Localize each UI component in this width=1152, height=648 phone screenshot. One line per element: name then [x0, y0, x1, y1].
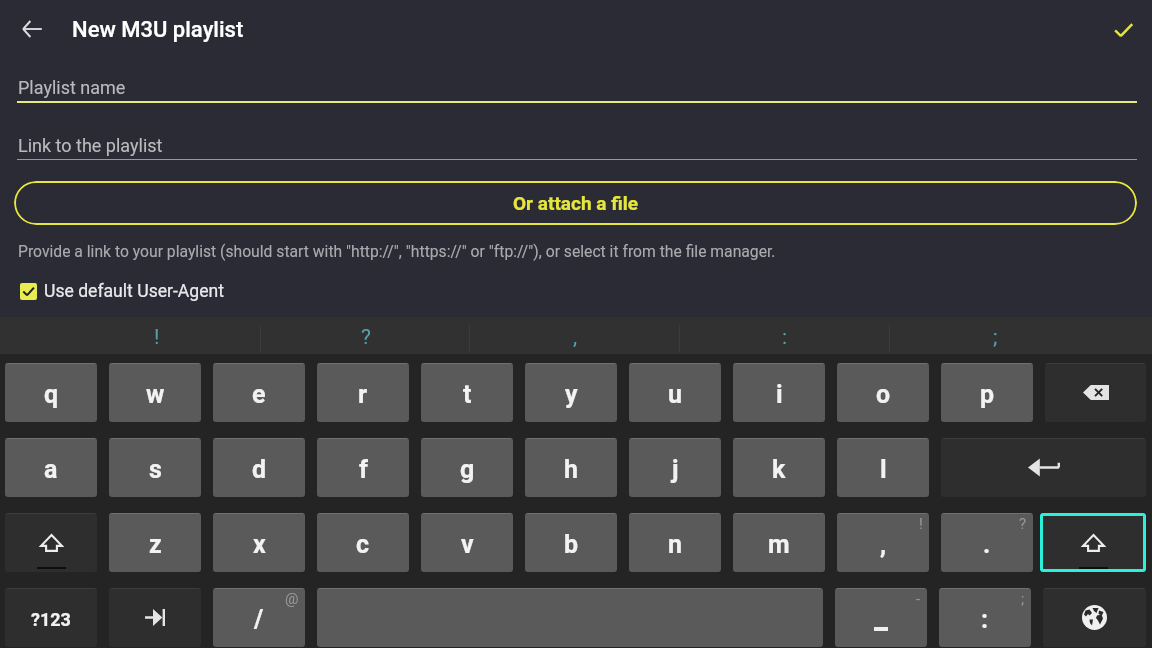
staticText: s — [149, 455, 162, 484]
staticText: ? — [1019, 515, 1027, 533]
button[interactable]: x — [213, 513, 305, 572]
staticText: z — [149, 530, 162, 559]
staticText: @ — [285, 590, 299, 608]
button[interactable]: o — [837, 363, 929, 422]
staticText: j — [672, 455, 679, 484]
button[interactable]: Backspace — [1045, 363, 1146, 422]
staticText: , — [880, 530, 887, 559]
staticText: ; — [993, 325, 998, 350]
button[interactable]: h — [525, 438, 617, 497]
staticText: u — [668, 380, 683, 409]
staticText: p — [980, 380, 995, 409]
staticText: : — [782, 325, 788, 350]
button[interactable]: , — [470, 317, 680, 354]
button[interactable]: Save — [1102, 8, 1144, 50]
button[interactable]: Back — [12, 9, 52, 49]
button[interactable]: - — [835, 588, 927, 647]
staticText: b — [564, 530, 579, 559]
staticText: ! — [154, 325, 160, 350]
button[interactable]: Link to the playlist — [0, 127, 1152, 161]
button[interactable]: v — [421, 513, 513, 572]
staticText: k — [772, 455, 786, 484]
button[interactable]: i — [733, 363, 825, 422]
button[interactable]: Or attach a file — [14, 181, 1137, 225]
button[interactable]: , — [837, 513, 929, 572]
button[interactable]: e — [213, 363, 305, 422]
staticText: q — [44, 380, 59, 409]
staticText: ! — [919, 515, 923, 533]
button[interactable]: d — [213, 438, 305, 497]
button[interactable]: . — [941, 513, 1033, 572]
button[interactable]: z — [109, 513, 201, 572]
staticText: . — [983, 530, 991, 559]
staticText: Use default User-Agent — [44, 281, 225, 302]
button[interactable]: Use default User-Agent — [20, 278, 225, 304]
staticText: r — [358, 380, 368, 409]
button[interactable]: s — [109, 438, 201, 497]
staticText: : — [981, 605, 989, 634]
staticText: , — [573, 325, 578, 350]
button[interactable]: ; — [890, 317, 1100, 354]
button[interactable]: Shift — [5, 513, 97, 572]
staticText: Link to the playlist — [18, 135, 163, 156]
staticText: f — [359, 455, 368, 484]
staticText: w — [146, 380, 165, 409]
staticText: t — [463, 380, 472, 409]
staticText: n — [668, 530, 683, 559]
staticText: Or attach a file — [513, 192, 639, 214]
staticText: v — [461, 530, 474, 559]
staticText: New M3U playlist — [72, 17, 244, 43]
button[interactable]: m — [733, 513, 825, 572]
staticText: / — [254, 605, 264, 634]
button[interactable]: l — [837, 438, 929, 497]
staticText: ?123 — [31, 609, 71, 630]
button[interactable]: f — [317, 438, 409, 497]
button[interactable]: y — [525, 363, 617, 422]
button[interactable]: ! — [52, 317, 261, 354]
staticText: ; — [1021, 590, 1025, 608]
staticText: ? — [361, 325, 371, 350]
button[interactable]: Enter — [941, 438, 1146, 497]
button[interactable]: Language — [1043, 588, 1146, 647]
button[interactable]: Playlist name — [0, 68, 1152, 103]
staticText: d — [252, 455, 267, 484]
staticText: a — [44, 455, 58, 484]
staticText: - — [916, 590, 921, 608]
staticText: e — [252, 380, 266, 409]
button[interactable]: w — [109, 363, 201, 422]
staticText: x — [253, 530, 266, 559]
button[interactable]: k — [733, 438, 825, 497]
button[interactable]: a — [5, 438, 97, 497]
staticText: l — [880, 455, 887, 484]
staticText: Provide a link to your playlist (should … — [18, 242, 776, 260]
button[interactable]: : — [939, 588, 1031, 647]
button[interactable]: / — [213, 588, 305, 647]
staticText: y — [565, 380, 578, 409]
button[interactable]: c — [317, 513, 409, 572]
button[interactable]: : — [680, 317, 890, 354]
staticText: c — [356, 530, 370, 559]
staticText: Playlist name — [18, 77, 126, 98]
button[interactable]: r — [317, 363, 409, 422]
button[interactable]: u — [629, 363, 721, 422]
staticText: g — [460, 455, 475, 484]
button[interactable]: n — [629, 513, 721, 572]
button[interactable]: Shift — [1040, 513, 1146, 572]
button[interactable]: g — [421, 438, 513, 497]
staticText: m — [768, 530, 790, 559]
button[interactable]: j — [629, 438, 721, 497]
button[interactable]: q — [5, 363, 97, 422]
button[interactable]: b — [525, 513, 617, 572]
staticText: i — [776, 380, 783, 409]
button[interactable]: ?123 — [5, 588, 97, 647]
button[interactable]: p — [941, 363, 1033, 422]
button[interactable]: Tab — [109, 588, 201, 647]
staticText: o — [876, 380, 891, 409]
button[interactable]: t — [421, 363, 513, 422]
staticText: h — [564, 455, 579, 484]
button[interactable]: ? — [261, 317, 470, 354]
